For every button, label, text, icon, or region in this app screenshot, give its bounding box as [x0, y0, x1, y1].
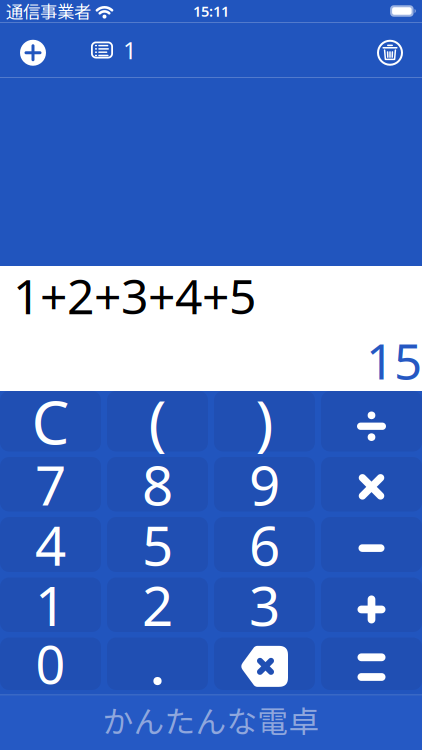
button[interactable] — [107, 637, 208, 690]
staticText: 1+2+3+4+5 — [13, 264, 256, 328]
button[interactable]: 9 — [214, 457, 315, 511]
staticText: 2 — [142, 568, 173, 641]
button[interactable] — [0, 34, 46, 66]
staticText: 1 — [123, 34, 137, 66]
staticText: 15 — [366, 328, 422, 393]
button[interactable] — [321, 457, 422, 511]
button[interactable]: 1 — [46, 34, 137, 66]
button[interactable] — [214, 637, 315, 690]
button[interactable]: 1 — [0, 577, 101, 632]
button[interactable]: 4 — [0, 517, 101, 572]
staticText: かんたんな電卓 — [102, 697, 319, 742]
staticText: 0 — [35, 629, 65, 698]
staticText: 5 — [142, 508, 173, 581]
button[interactable]: C — [0, 391, 101, 451]
button[interactable] — [321, 517, 422, 572]
button[interactable] — [321, 391, 422, 451]
button[interactable]: 0 — [0, 637, 101, 690]
button[interactable]: ) — [214, 391, 315, 451]
button[interactable]: 6 — [214, 517, 315, 572]
button[interactable]: ( — [107, 391, 208, 451]
staticText: 15:11 — [193, 1, 229, 21]
button[interactable] — [377, 34, 422, 66]
button[interactable] — [321, 577, 422, 632]
button[interactable] — [321, 637, 422, 690]
button[interactable]: 7 — [0, 457, 101, 511]
staticText: 7 — [35, 448, 66, 521]
button[interactable]: 3 — [214, 577, 315, 632]
button[interactable]: 2 — [107, 577, 208, 632]
staticText: 6 — [249, 508, 280, 581]
button[interactable]: 5 — [107, 517, 208, 572]
staticText: 3 — [249, 568, 280, 641]
staticText: ( — [148, 381, 166, 461]
staticText: 8 — [142, 448, 173, 521]
staticText: ) — [255, 381, 273, 461]
button[interactable]: かんたんな電卓 — [0, 695, 422, 750]
button[interactable]: 8 — [107, 457, 208, 511]
staticText: 9 — [249, 448, 280, 521]
staticText: 1 — [35, 568, 66, 641]
staticText: 通信事業者 — [6, 0, 91, 24]
staticText: 4 — [35, 508, 66, 581]
staticText: C — [31, 381, 69, 461]
